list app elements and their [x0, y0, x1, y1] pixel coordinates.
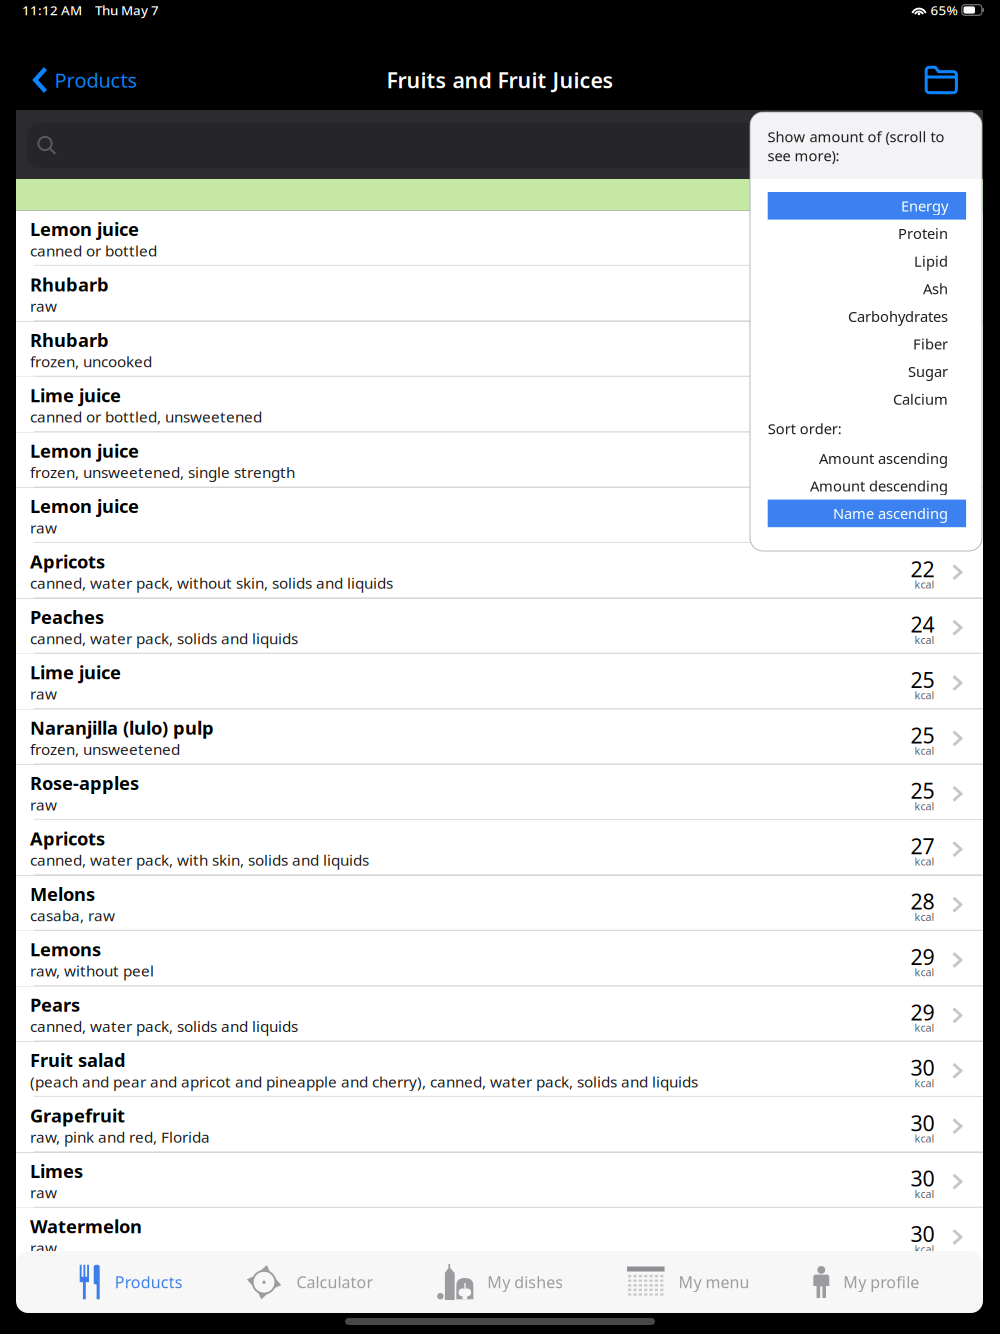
staticText: Pears — [30, 992, 80, 1017]
staticText: casaba, raw — [30, 905, 115, 925]
button[interactable]: Naranjilla (lulo) pulp — [16, 709, 983, 764]
staticText: 65% — [931, 1, 958, 19]
staticText: 30 — [910, 1053, 934, 1082]
staticText: 30 — [910, 1219, 934, 1248]
staticText: kcal — [914, 688, 934, 702]
staticText: Show amount of (scroll to — [767, 127, 944, 146]
staticText: raw — [30, 296, 57, 316]
button[interactable]: Sugar — [768, 358, 966, 385]
staticText: Fruit salad — [30, 1048, 126, 1072]
staticText: 30 — [910, 1109, 934, 1137]
staticText: 27 — [910, 832, 934, 860]
button[interactable]: Lemon juice — [16, 210, 983, 266]
button[interactable]: Amount descending — [768, 472, 966, 500]
staticText: raw — [30, 1238, 57, 1258]
button[interactable]: Lime juice — [16, 377, 983, 432]
staticText: Apricots — [30, 549, 105, 574]
button[interactable]: Watermelon — [16, 1208, 983, 1263]
staticText: Melons — [30, 882, 95, 906]
staticText: kcal — [914, 799, 934, 813]
staticText: Fiber — [913, 334, 948, 354]
staticText: Amount descending — [810, 476, 948, 496]
button[interactable]: Grapefruit — [16, 1097, 983, 1152]
button[interactable]: Lemon juice — [16, 432, 983, 487]
button[interactable]: Lipid — [768, 247, 966, 275]
staticText: canned or bottled, unsweetened — [30, 407, 262, 427]
button[interactable]: Fruit salad — [16, 1041, 983, 1097]
staticText: My dishes — [487, 1271, 563, 1293]
staticText: kcal — [914, 633, 934, 647]
staticText: Lemons — [30, 937, 101, 961]
button[interactable]: Carbohydrates — [768, 302, 966, 330]
button[interactable]: Products — [80, 1251, 183, 1313]
staticText: kcal — [914, 1076, 934, 1090]
staticText: Lipid — [914, 251, 948, 271]
staticText: My profile — [843, 1271, 919, 1293]
staticText: Protein — [898, 224, 948, 243]
staticText: 24 — [910, 610, 934, 638]
button[interactable]: Products — [0, 60, 150, 100]
button[interactable]: Fiber — [768, 330, 966, 358]
button[interactable]: Limes — [16, 1152, 983, 1208]
staticText: Carbohydrates — [848, 306, 948, 326]
staticText: kcal — [914, 1131, 934, 1145]
button[interactable]: Energy — [768, 192, 966, 220]
staticText: see more): — [767, 146, 839, 165]
staticText: Peaches — [30, 605, 104, 629]
staticText: kcal — [914, 1020, 934, 1035]
staticText: Products — [55, 67, 138, 93]
staticText: canned, water pack, with skin, solids an… — [30, 850, 369, 870]
staticText: Sugar — [908, 362, 948, 381]
staticText: Name ascending — [833, 504, 948, 523]
staticText: Ash — [923, 279, 948, 298]
staticText: kcal — [914, 1242, 934, 1256]
staticText: canned, water pack, solids and liquids — [30, 1016, 298, 1036]
staticText: Products — [115, 1271, 183, 1293]
staticText: raw — [30, 517, 57, 538]
button[interactable]: Amount ascending — [768, 444, 966, 472]
staticText: 22 — [910, 555, 934, 583]
button[interactable]: Rhubarb — [16, 266, 983, 321]
staticText: Watermelon — [30, 1214, 142, 1238]
button[interactable]: Apricots — [16, 543, 983, 598]
button[interactable]: My menu — [627, 1251, 750, 1313]
staticText: raw, pink and red, Florida — [30, 1127, 210, 1147]
staticText: Calculator — [296, 1271, 373, 1293]
staticText: Rose-apples — [30, 771, 139, 795]
button[interactable]: My profile — [813, 1251, 919, 1313]
button[interactable]: Rose-apples — [16, 764, 983, 820]
button[interactable]: My dishes — [437, 1251, 563, 1313]
staticText: raw — [30, 684, 57, 704]
staticText: kcal — [914, 743, 934, 758]
staticText: canned, water pack, without skin, solids… — [30, 573, 393, 593]
button[interactable]: Lemon juice — [16, 487, 983, 543]
staticText: 25 — [910, 665, 934, 694]
button[interactable]: Protein — [768, 220, 966, 247]
staticText: Calcium — [893, 389, 948, 409]
staticText: Sort order: — [768, 419, 842, 438]
button[interactable]: Lemons — [16, 931, 983, 986]
staticText: raw, without peel — [30, 961, 154, 981]
staticText: kcal — [914, 1187, 934, 1201]
staticText: (peach and pear and apricot and pineappl… — [30, 1071, 698, 1092]
button[interactable]: Rhubarb — [16, 321, 983, 377]
staticText: Amount ascending — [819, 448, 948, 468]
staticText: Thu May 7 — [95, 1, 159, 19]
staticText: kcal — [914, 965, 934, 979]
button[interactable]: Peaches — [16, 598, 983, 654]
staticText: 29 — [910, 998, 934, 1026]
button[interactable]: Pears — [16, 986, 983, 1041]
button[interactable]: Calculator — [246, 1251, 373, 1313]
staticText: Lime juice — [30, 383, 121, 407]
button[interactable]: Name ascending — [768, 500, 966, 527]
button[interactable]: Ash — [768, 275, 966, 302]
staticText: frozen, unsweetened, single strength — [30, 462, 295, 482]
button[interactable]: Melons — [16, 875, 983, 931]
staticText: Lemon juice — [30, 494, 139, 518]
button[interactable]: Calcium — [768, 385, 966, 413]
staticText: Rhubarb — [30, 272, 109, 297]
button[interactable]: Apricots — [16, 820, 983, 875]
button[interactable]: Folders — [907, 60, 1000, 100]
button[interactable]: Lime juice — [16, 654, 983, 709]
staticText: 25 — [910, 721, 934, 749]
